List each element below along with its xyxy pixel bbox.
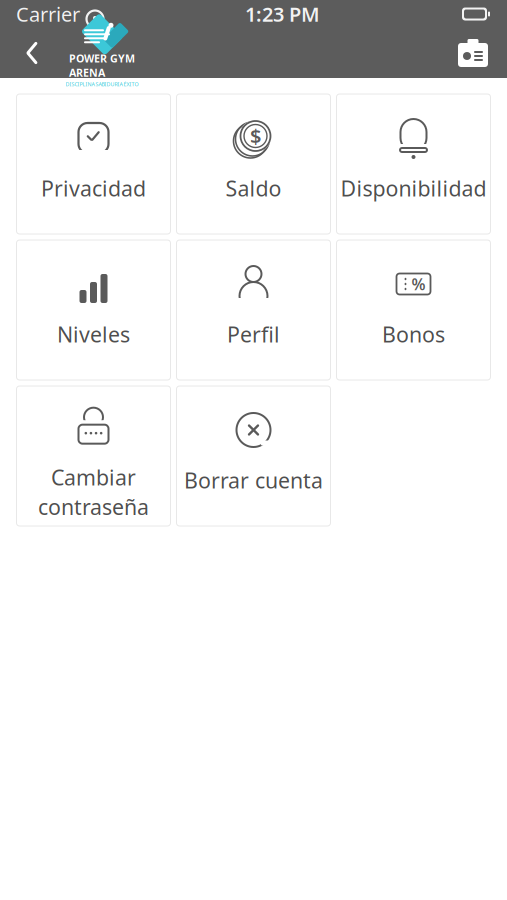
staticText: Perfil bbox=[227, 320, 280, 348]
button[interactable]: Back bbox=[10, 28, 54, 78]
staticText: Cambiar bbox=[51, 463, 136, 491]
staticText: Saldo bbox=[225, 174, 281, 202]
staticText: 1:23 PM bbox=[245, 1, 320, 27]
staticText: Borrar cuenta bbox=[184, 466, 323, 494]
staticText: % bbox=[411, 273, 425, 295]
button[interactable]: Membership card bbox=[449, 28, 497, 78]
staticText: Bonos bbox=[382, 320, 445, 348]
staticText: Disponibilidad bbox=[340, 174, 486, 202]
button[interactable]: Privacidad bbox=[16, 94, 170, 234]
button[interactable]: Borrar cuenta bbox=[176, 386, 330, 526]
staticText: Niveles bbox=[57, 320, 130, 348]
staticText: $ bbox=[250, 123, 261, 149]
staticText: contraseña bbox=[38, 492, 149, 521]
button[interactable]: Perfil bbox=[176, 240, 330, 380]
staticText: Privacidad bbox=[41, 174, 146, 202]
button[interactable]: Disponibilidad bbox=[336, 94, 490, 234]
staticText: Carrier bbox=[16, 1, 80, 27]
staticText: DISCIPLINA SABIDURIA ÉXITO bbox=[65, 81, 138, 88]
button[interactable]: Cambiar bbox=[16, 386, 170, 526]
staticText: POWER GYM ARENA bbox=[69, 51, 135, 80]
button[interactable]: Niveles bbox=[16, 240, 170, 380]
button[interactable]: % bbox=[336, 240, 490, 380]
button[interactable]: $ bbox=[176, 94, 330, 234]
